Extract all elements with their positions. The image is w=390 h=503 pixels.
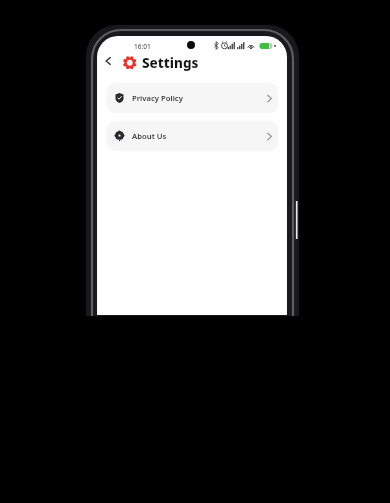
staticText: Settings xyxy=(142,54,199,72)
staticText: About Us xyxy=(132,131,167,141)
staticText: 16:01 xyxy=(134,42,151,51)
button[interactable]: About Us xyxy=(107,121,278,151)
staticText: Privacy Policy xyxy=(132,93,183,103)
button[interactable] xyxy=(102,55,114,67)
button[interactable]: Privacy Policy xyxy=(107,83,278,113)
